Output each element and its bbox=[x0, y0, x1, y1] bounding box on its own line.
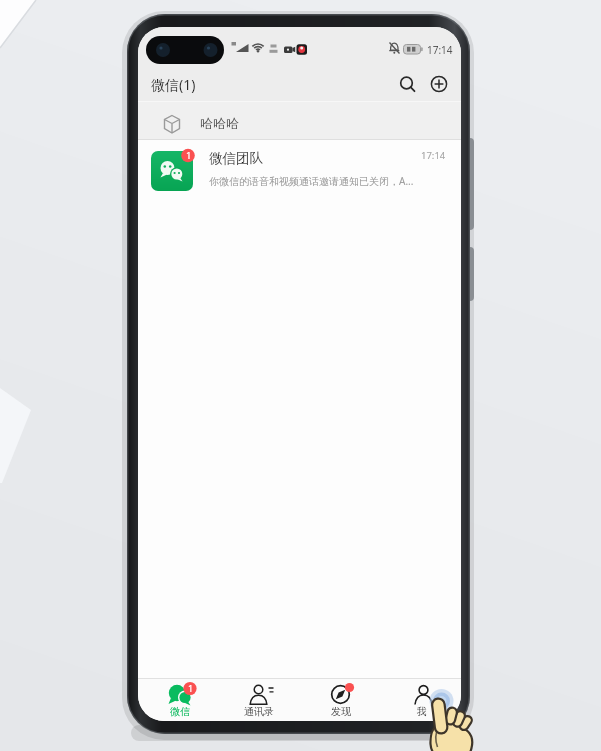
button[interactable] bbox=[428, 73, 454, 97]
button[interactable] bbox=[138, 140, 461, 196]
button[interactable] bbox=[396, 73, 422, 97]
button[interactable] bbox=[300, 679, 381, 721]
staticText: 哈哈哈 bbox=[200, 115, 239, 131]
staticText: 1 bbox=[188, 682, 194, 694]
staticText: 1 bbox=[186, 149, 192, 162]
button[interactable] bbox=[138, 102, 461, 140]
staticText: 你微信的语音和视频通话邀请通知已关闭，A... bbox=[209, 174, 414, 188]
staticText: 通讯录 bbox=[244, 705, 274, 718]
button[interactable] bbox=[138, 679, 219, 721]
staticText: 17:14 bbox=[421, 149, 446, 162]
staticText: 微信团队 bbox=[209, 150, 263, 167]
button[interactable] bbox=[381, 679, 461, 721]
staticText: 微信(1) bbox=[151, 75, 196, 94]
staticText: 发现 bbox=[331, 705, 351, 718]
staticText: 我 bbox=[417, 705, 427, 718]
staticText: 17:14 bbox=[427, 43, 453, 57]
button[interactable] bbox=[219, 679, 300, 721]
staticText: 微信 bbox=[170, 705, 190, 718]
